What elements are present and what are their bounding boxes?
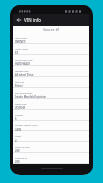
staticText: EX	[15, 51, 19, 55]
staticText: Source #1	[43, 27, 60, 32]
staticText: 4	[15, 139, 17, 143]
staticText: Cylinder capacity (ccm)	[15, 124, 38, 127]
staticText: VIN info	[24, 17, 41, 23]
staticText: Fuel type	[15, 81, 24, 84]
staticText: Motor code	[15, 103, 27, 106]
staticText: Model Name	[15, 48, 28, 51]
button[interactable]	[13, 120, 89, 131]
staticText: Cylinder	[15, 114, 24, 117]
staticText: HATCHBACK	[15, 62, 31, 66]
button[interactable]	[13, 110, 89, 121]
button[interactable]	[13, 153, 89, 164]
staticText: Power hp To	[15, 157, 28, 160]
button[interactable]	[13, 66, 89, 77]
staticText: 153	[15, 171, 20, 175]
button[interactable]	[13, 77, 89, 88]
staticText: Intake Manifold Injection	[15, 95, 47, 99]
staticText: Manu name	[15, 37, 27, 40]
button[interactable]	[13, 131, 89, 142]
staticText: 208	[15, 149, 20, 153]
staticText: 3498	[15, 128, 21, 132]
staticText: Construction type	[15, 59, 33, 62]
staticText: Fuel type/process	[15, 92, 33, 95]
staticText: INFINITI	[15, 40, 26, 44]
button[interactable]	[13, 44, 89, 55]
staticText: Valves	[15, 135, 22, 138]
button[interactable]	[13, 99, 89, 110]
button[interactable]	[13, 142, 89, 153]
staticText: All wheel Drive	[15, 73, 34, 77]
button[interactable]	[13, 55, 89, 66]
staticText: 6	[15, 117, 17, 121]
staticText: VQ35HR	[15, 106, 26, 110]
staticText: 208	[15, 160, 20, 164]
button[interactable]	[13, 88, 89, 99]
staticText: Power hp from	[15, 146, 30, 149]
button[interactable]: Back	[13, 14, 24, 26]
staticText: Injection type	[15, 70, 29, 73]
staticText: Petrol	[15, 84, 23, 88]
button[interactable]	[13, 164, 89, 175]
button[interactable]	[13, 33, 89, 44]
